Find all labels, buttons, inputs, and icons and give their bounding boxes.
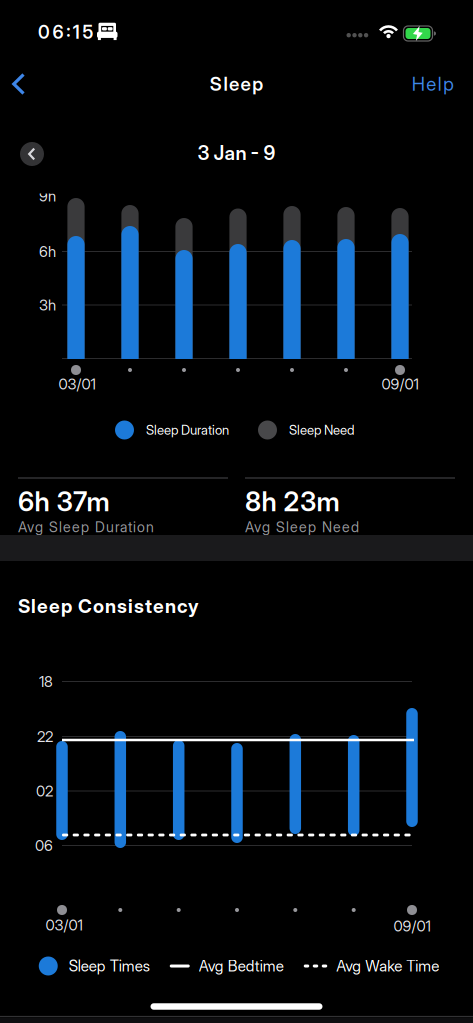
button[interactable] <box>12 73 26 95</box>
staticText: 9h <box>39 187 56 205</box>
staticText: Avg Sleep Duration <box>18 518 154 536</box>
staticText: Sleep Consistency <box>18 594 199 617</box>
staticText: Help <box>412 73 454 95</box>
staticText: 09/01 <box>393 917 430 935</box>
staticText: Sleep Need <box>289 422 354 438</box>
staticText: Sleep <box>210 73 263 95</box>
staticText: Avg Wake Time <box>336 957 439 975</box>
staticText: 3 Jan - 9 <box>197 141 275 165</box>
staticText: 18 <box>39 672 53 690</box>
staticText: 6h <box>39 242 56 260</box>
staticText: 6h 37m <box>18 485 109 518</box>
button[interactable] <box>20 142 44 166</box>
staticText: 09/01 <box>381 375 418 393</box>
staticText: Sleep Duration <box>146 422 229 438</box>
staticText: Sleep Times <box>69 957 150 975</box>
button[interactable]: Help <box>412 73 454 95</box>
staticText: Avg Sleep Need <box>245 518 359 536</box>
staticText: 03/01 <box>45 916 82 934</box>
staticText: 3h <box>39 296 56 314</box>
staticText: 06 <box>35 836 53 854</box>
staticText: 8h 23m <box>245 485 339 518</box>
staticText: Avg Bedtime <box>199 957 284 975</box>
staticText: 22 <box>37 727 53 745</box>
staticText: 06:15 <box>38 21 93 43</box>
staticText: 02 <box>36 782 53 800</box>
staticText: 03/01 <box>58 375 95 393</box>
